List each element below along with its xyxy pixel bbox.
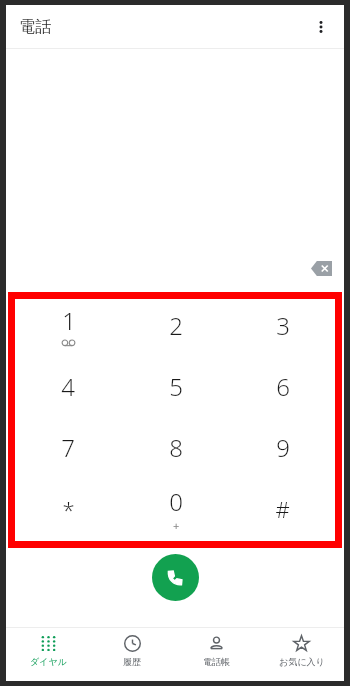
staticText: 0	[169, 485, 183, 518]
button[interactable]: 3	[229, 294, 336, 356]
staticText: 5	[169, 370, 183, 403]
button[interactable]: Call	[152, 554, 199, 601]
staticText: +	[173, 518, 180, 533]
button[interactable]: 7	[14, 417, 122, 478]
staticText: お気に入り	[279, 656, 325, 667]
button[interactable]: 4	[14, 356, 122, 417]
button[interactable]: 8	[122, 417, 229, 478]
staticText: 電話帳	[203, 656, 230, 667]
staticText: 履歴	[123, 656, 141, 667]
staticText: 3	[276, 309, 290, 342]
button[interactable]: Backspace	[304, 251, 338, 285]
staticText: #	[275, 494, 290, 524]
staticText: 9	[276, 431, 290, 464]
button[interactable]: 2	[122, 294, 229, 356]
staticText: 6	[276, 370, 290, 403]
staticText: 4	[61, 370, 75, 403]
button[interactable]: ダイヤル	[6, 628, 90, 681]
button[interactable]: お気に入り	[259, 628, 344, 681]
button[interactable]: #	[229, 478, 336, 539]
staticText: ダイヤル	[30, 656, 67, 667]
button[interactable]: *	[14, 478, 122, 539]
button[interactable]: 9	[229, 417, 336, 478]
staticText: 8	[169, 431, 183, 464]
button[interactable]: 1	[14, 294, 122, 356]
button[interactable]: 電話帳	[174, 628, 259, 681]
button[interactable]: More options	[304, 10, 338, 44]
staticText: 1	[62, 304, 76, 337]
button[interactable]: 6	[229, 356, 336, 417]
button[interactable]: 5	[122, 356, 229, 417]
staticText: 7	[61, 431, 75, 464]
staticText: 電話	[19, 17, 51, 37]
staticText: *	[62, 494, 75, 524]
button[interactable]: 0	[122, 478, 229, 539]
button[interactable]: 履歴	[90, 628, 174, 681]
staticText: 2	[169, 309, 183, 342]
